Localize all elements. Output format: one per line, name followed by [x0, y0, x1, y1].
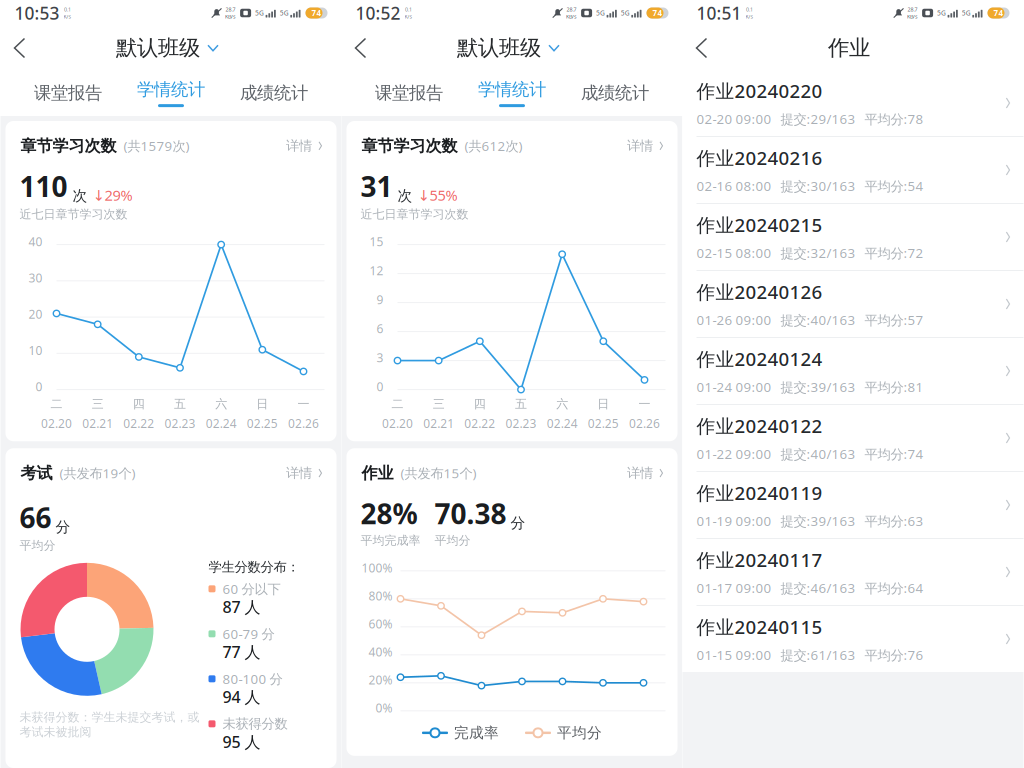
staticText: 作业20240122 [696, 413, 822, 438]
button[interactable]: 作业20240216 [682, 137, 1023, 203]
staticText: 课堂报告 [375, 82, 443, 104]
button[interactable]: 作业20240122 [682, 405, 1023, 471]
staticText: 66 [19, 499, 51, 536]
button[interactable]: 作业20240215 [682, 204, 1023, 270]
button[interactable]: 作业20240117 [682, 539, 1023, 605]
staticText: 成绩统计 [240, 82, 308, 104]
staticText: 77 人 [222, 641, 260, 662]
staticText: 02-16 08:00 提交:30/163 平均分:54 [696, 177, 923, 195]
staticText: 五 [174, 397, 186, 411]
button[interactable]: 作业20240126 [682, 271, 1023, 337]
staticText: 平均完成率 [360, 533, 420, 548]
button[interactable]: 返回 [0, 26, 38, 70]
staticText: 平均分 [557, 724, 602, 742]
button[interactable]: 返回 [682, 26, 720, 70]
staticText: 作业 [828, 35, 870, 61]
staticText: 10:53 [14, 1, 59, 24]
staticText: 成绩统计 [581, 82, 649, 104]
staticText: 5G [937, 8, 946, 17]
staticText: 0 [35, 379, 42, 394]
button[interactable]: 作业20240115 [682, 606, 1023, 672]
staticText: 60-79 分 [222, 625, 274, 643]
staticText: 10:52 [355, 1, 400, 24]
button[interactable]: 课堂报告 [16, 73, 119, 113]
staticText: 02.21 [423, 415, 454, 431]
button[interactable]: 详情 [627, 138, 662, 154]
button[interactable]: 详情 [286, 138, 321, 154]
button[interactable]: 课堂报告 [357, 73, 460, 113]
button[interactable]: 作业20240220 [682, 70, 1023, 136]
staticText: 详情 [627, 138, 653, 154]
button[interactable]: 返回 [341, 26, 379, 70]
staticText: 02-20 09:00 提交:29/163 平均分:78 [696, 110, 923, 128]
staticText: 二 [50, 397, 62, 411]
staticText: 未获得分数 [222, 716, 287, 732]
button[interactable]: 成绩统计 [222, 73, 325, 113]
staticText: 02.23 [164, 415, 195, 431]
staticText: (共发布15个) [400, 464, 476, 482]
staticText: 完成率 [454, 724, 499, 742]
staticText: 一 [297, 397, 309, 411]
button[interactable]: 详情 [627, 465, 662, 481]
staticText: 01-19 09:00 提交:39/163 平均分:63 [696, 512, 923, 530]
staticText: 默认班级 [457, 35, 541, 61]
staticText: 02.24 [547, 415, 578, 431]
staticText: K/s [63, 13, 71, 20]
staticText: 10:51 [696, 1, 741, 24]
staticText: 02.20 [382, 415, 413, 431]
staticText: ↓55% [417, 185, 457, 205]
staticText: 近七日章节学习次数 [360, 207, 468, 221]
staticText: 章节学习次数 [361, 136, 457, 156]
staticText: 28.7 [908, 6, 918, 13]
staticText: 5G [255, 8, 264, 17]
staticText: 学情统计 [137, 79, 205, 100]
staticText: 01-17 09:00 提交:46/163 平均分:64 [696, 579, 923, 597]
staticText: 作业20240119 [696, 480, 822, 505]
button[interactable]: 默认班级 [116, 35, 218, 61]
staticText: 28.7 [226, 6, 236, 13]
staticText: 一 [638, 397, 650, 411]
staticText: 74 [652, 8, 662, 18]
staticText: 0.1 [746, 6, 753, 13]
staticText: 02.25 [588, 415, 619, 431]
staticText: (共1579次) [123, 137, 189, 155]
staticText: 四 [474, 397, 486, 411]
staticText: 02.26 [629, 415, 660, 431]
staticText: ↓29% [92, 185, 132, 205]
button[interactable]: 作业20240119 [682, 472, 1023, 538]
staticText: 02.21 [82, 415, 113, 431]
button[interactable]: 学情统计 [460, 71, 563, 115]
staticText: 次 [72, 187, 87, 205]
staticText: 5G [596, 8, 605, 17]
staticText: 80% [368, 588, 392, 604]
staticText: 02.25 [247, 415, 278, 431]
staticText: 分 [510, 514, 525, 532]
staticText: 80-100 分 [222, 670, 282, 688]
staticText: 20% [368, 672, 392, 688]
staticText: KB/s [566, 13, 577, 20]
button[interactable]: 默认班级 [457, 35, 559, 61]
staticText: 30 [28, 270, 42, 286]
button[interactable]: 作业20240124 [682, 338, 1023, 404]
staticText: 次 [397, 187, 412, 205]
staticText: 01-24 09:00 提交:39/163 平均分:81 [696, 378, 923, 396]
staticText: 6 [376, 321, 383, 336]
staticText: 0.1 [405, 6, 412, 13]
staticText: 六 [556, 397, 568, 411]
staticText: 02.22 [123, 415, 154, 431]
staticText: 40 [28, 234, 42, 249]
staticText: 四 [133, 397, 145, 411]
staticText: 5G [962, 8, 971, 17]
staticText: 5G [280, 8, 289, 17]
staticText: 六 [215, 397, 227, 411]
staticText: 作业20240215 [696, 212, 822, 237]
staticText: 作业20240115 [696, 614, 822, 639]
button[interactable]: 详情 [286, 465, 321, 481]
staticText: 平均分 [19, 538, 55, 553]
staticText: 平均分 [434, 533, 470, 548]
button[interactable]: 成绩统计 [563, 73, 666, 113]
button[interactable]: 学情统计 [119, 71, 222, 115]
